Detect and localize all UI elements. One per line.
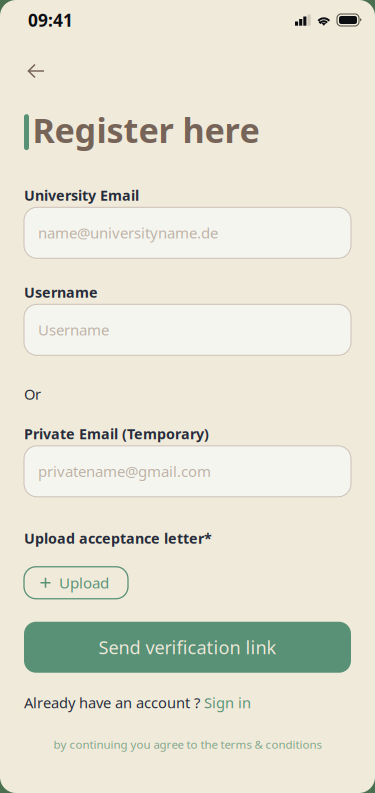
staticText: privatename@gmail.com (38, 461, 211, 481)
staticText: Upload acceptance letter* (24, 529, 212, 548)
staticText: name@universityname.de (38, 223, 218, 243)
staticText: Send verification link (98, 635, 276, 659)
button[interactable]: Send verification link (24, 622, 351, 673)
staticText: Register here (32, 107, 259, 152)
staticText: Private Email (Temporary) (24, 424, 209, 443)
staticText: Username (24, 283, 98, 302)
button[interactable]: Back (19, 56, 53, 86)
button[interactable]: Upload (24, 567, 128, 599)
staticText: Or (24, 384, 41, 404)
staticText: 09:41 (28, 8, 73, 31)
staticText: by continuing you agree to the terms & c… (53, 737, 321, 752)
staticText: University Email (24, 186, 139, 205)
button[interactable]: Sign in (204, 693, 251, 712)
staticText: Upload (59, 573, 109, 593)
staticText: Already have an account ? (24, 693, 204, 712)
staticText: Sign in (204, 693, 251, 712)
staticText: Username (38, 320, 109, 340)
